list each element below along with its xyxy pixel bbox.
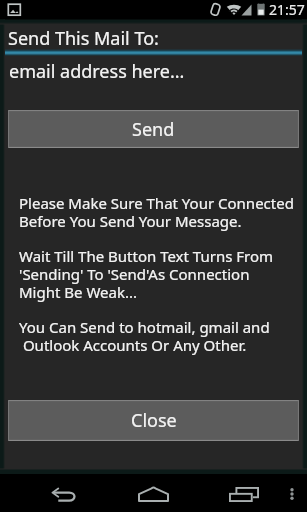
button[interactable]: Send xyxy=(8,110,299,148)
staticText: Send xyxy=(132,117,175,142)
staticText: You Can Send to hotmail, gmail and xyxy=(19,317,270,337)
staticText: email address here... xyxy=(9,59,185,84)
staticText: Wait Till The Button Text Turns From xyxy=(19,246,274,266)
button[interactable]: Home xyxy=(129,479,177,509)
button[interactable]: More options xyxy=(278,479,306,509)
staticText: 21:57 xyxy=(269,0,305,19)
staticText: Close xyxy=(131,408,177,433)
staticText: Outlook Accounts Or Any Other. xyxy=(19,335,247,355)
staticText: Might Be Weak... xyxy=(19,282,137,302)
button[interactable]: Close xyxy=(8,400,299,441)
staticText: Please Make Sure That Your Connected xyxy=(19,193,294,213)
button[interactable]: Recent apps xyxy=(220,479,268,509)
staticText: Send This Mail To: xyxy=(8,26,159,51)
button[interactable]: Back xyxy=(40,480,88,510)
button[interactable]: email address here... xyxy=(0,55,307,109)
staticText: 'Sending' To 'Send'As Connection xyxy=(19,264,250,284)
staticText: Before You Send Your Message. xyxy=(19,211,242,231)
